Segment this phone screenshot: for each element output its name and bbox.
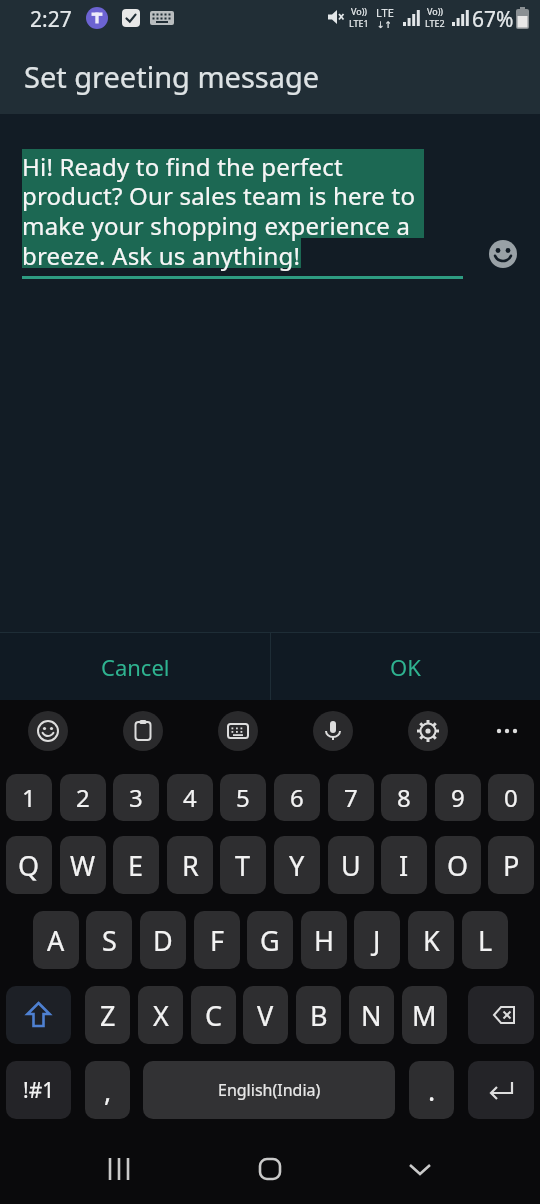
staticText: LTE2 [425,17,445,29]
button[interactable]: 4 [167,774,213,821]
button[interactable]: O [435,836,481,894]
staticText: ↓↑ [377,20,393,30]
button[interactable]: S [86,911,132,969]
button[interactable]: M [402,986,447,1044]
button[interactable]: A [33,911,79,969]
staticText: V [257,997,274,1034]
staticText: 5 [236,781,250,814]
button[interactable]: I [381,836,427,894]
button[interactable]: N [349,986,394,1044]
button[interactable]: 6 [274,774,320,821]
staticText: Set greeting message [24,57,320,96]
staticText: A [47,922,65,959]
button[interactable] [468,1061,534,1119]
button[interactable] [123,711,163,751]
staticText: Cancel [101,652,170,682]
button[interactable]: 1 [6,774,52,821]
staticText: Q [18,847,40,884]
staticText: U [341,847,361,884]
button[interactable]: W [60,836,106,894]
staticText: LTE [376,5,394,20]
button[interactable] [6,986,71,1044]
button[interactable]: English(India) [143,1061,395,1119]
staticText: W [70,847,96,884]
button[interactable]: T [220,836,266,894]
button[interactable]: 7 [328,774,374,821]
staticText: Y [289,847,305,884]
staticText: S [102,922,117,959]
staticText: 0 [504,781,518,814]
staticText: J [373,922,381,959]
staticText: C [205,997,223,1034]
staticText: L [478,922,493,959]
staticText: !#1 [23,1076,55,1105]
button[interactable]: P [488,836,534,894]
button[interactable]: H [301,911,347,969]
button[interactable]: C [191,986,236,1044]
button[interactable]: X [138,986,183,1044]
staticText: P [503,847,520,884]
button[interactable] [487,711,527,751]
button[interactable]: U [328,836,374,894]
staticText: English(India) [218,1079,321,1101]
button[interactable]: G [247,911,293,969]
button[interactable]: R [167,836,213,894]
staticText: G [260,922,280,959]
button[interactable]: , [85,1061,130,1119]
button[interactable]: L [462,911,508,969]
button[interactable]: 2 [60,774,106,821]
button[interactable]: D [140,911,186,969]
button[interactable]: E [113,836,159,894]
staticText: 8 [397,781,411,814]
button[interactable]: 5 [220,774,266,821]
button[interactable]: 3 [113,774,159,821]
button[interactable]: . [409,1061,454,1119]
button[interactable]: 8 [381,774,427,821]
staticText: Hi! Ready to find the perfect product? O… [22,150,492,272]
button[interactable]: 9 [435,774,481,821]
button[interactable] [98,1148,140,1190]
button[interactable] [313,711,353,751]
button[interactable]: V [243,986,288,1044]
staticText: K [423,922,440,959]
staticText: 4 [183,781,197,814]
staticText: . [428,1072,436,1109]
staticText: 1 [22,781,36,814]
staticText: 2 [76,781,90,814]
button[interactable] [408,711,448,751]
staticText: E [128,847,144,884]
button[interactable] [218,711,258,751]
staticText: R [182,847,199,884]
button[interactable]: J [354,911,400,969]
button[interactable]: OK [270,633,540,700]
staticText: H [314,922,335,959]
button[interactable]: Y [274,836,320,894]
staticText: OK [390,652,421,682]
button[interactable] [399,1148,441,1190]
button[interactable] [28,711,68,751]
staticText: , [104,1072,112,1109]
button[interactable]: F [194,911,240,969]
staticText: F [210,922,225,959]
button[interactable]: K [408,911,454,969]
button[interactable] [468,986,534,1044]
staticText: M [412,997,437,1034]
staticText: 2:27 [30,5,72,34]
button[interactable]: 0 [488,774,534,821]
button[interactable]: Cancel [0,633,270,700]
staticText: 3 [129,781,143,814]
staticText: LTE1 [349,17,369,29]
staticText: X [153,997,169,1034]
staticText: 7 [344,781,358,814]
button[interactable]: Z [85,986,130,1044]
staticText: B [310,997,328,1034]
staticText: O [447,847,469,884]
button[interactable]: Q [6,836,52,894]
button[interactable]: !#1 [6,1061,71,1119]
button[interactable] [489,240,517,268]
button[interactable] [249,1148,291,1190]
staticText: Vo)) [351,5,368,17]
staticText: N [361,997,382,1034]
staticText: Z [100,997,116,1034]
button[interactable]: B [296,986,341,1044]
